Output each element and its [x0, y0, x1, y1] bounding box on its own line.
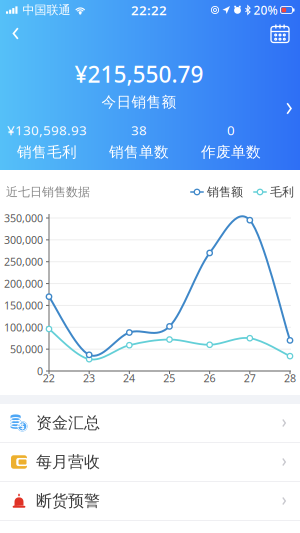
staticText: 22 [43, 371, 55, 385]
staticText: 27 [244, 371, 256, 385]
button[interactable]: 断货预警 [0, 482, 300, 520]
staticText: 断货预警 [36, 491, 100, 511]
staticText: ¥130,598.93 [7, 121, 87, 139]
staticText: 300,000 [4, 233, 43, 247]
staticText: 近七日销售数据 [6, 185, 90, 199]
staticText: 销售额 [207, 185, 243, 199]
staticText: 0 [227, 121, 235, 139]
staticText: 销售毛利 [17, 143, 77, 161]
staticText: 毛利 [270, 185, 294, 199]
staticText: 26 [203, 371, 215, 385]
staticText: 中国联通 [22, 3, 70, 17]
staticText: 250,000 [4, 255, 43, 269]
staticText: 28 [284, 371, 296, 385]
staticText: 作废单数 [201, 143, 261, 161]
button[interactable]: 资金汇总 [0, 404, 300, 442]
staticText: 0 [37, 364, 43, 378]
staticText: 150,000 [4, 298, 43, 312]
staticText: 100,000 [4, 320, 43, 334]
staticText: 50,000 [10, 342, 43, 356]
staticText: 22:22 [131, 1, 167, 19]
button[interactable]: 每月营收 [0, 443, 300, 481]
staticText: 今日销售额 [101, 93, 176, 111]
staticText: 每月营收 [36, 452, 100, 472]
staticText: 38 [131, 121, 147, 139]
button[interactable]: Calendar [262, 19, 300, 47]
staticText: 20% [253, 2, 277, 18]
staticText: 200,000 [4, 276, 43, 291]
staticText: 资金汇总 [36, 413, 100, 433]
button[interactable]: Details [278, 88, 300, 128]
staticText: 24 [123, 371, 135, 385]
staticText: 350,000 [4, 211, 43, 225]
staticText: 23 [83, 371, 95, 385]
staticText: 25 [163, 371, 175, 385]
staticText: 销售单数 [109, 143, 169, 161]
staticText: ¥215,550.79 [74, 59, 203, 89]
button[interactable]: Back [0, 19, 32, 47]
